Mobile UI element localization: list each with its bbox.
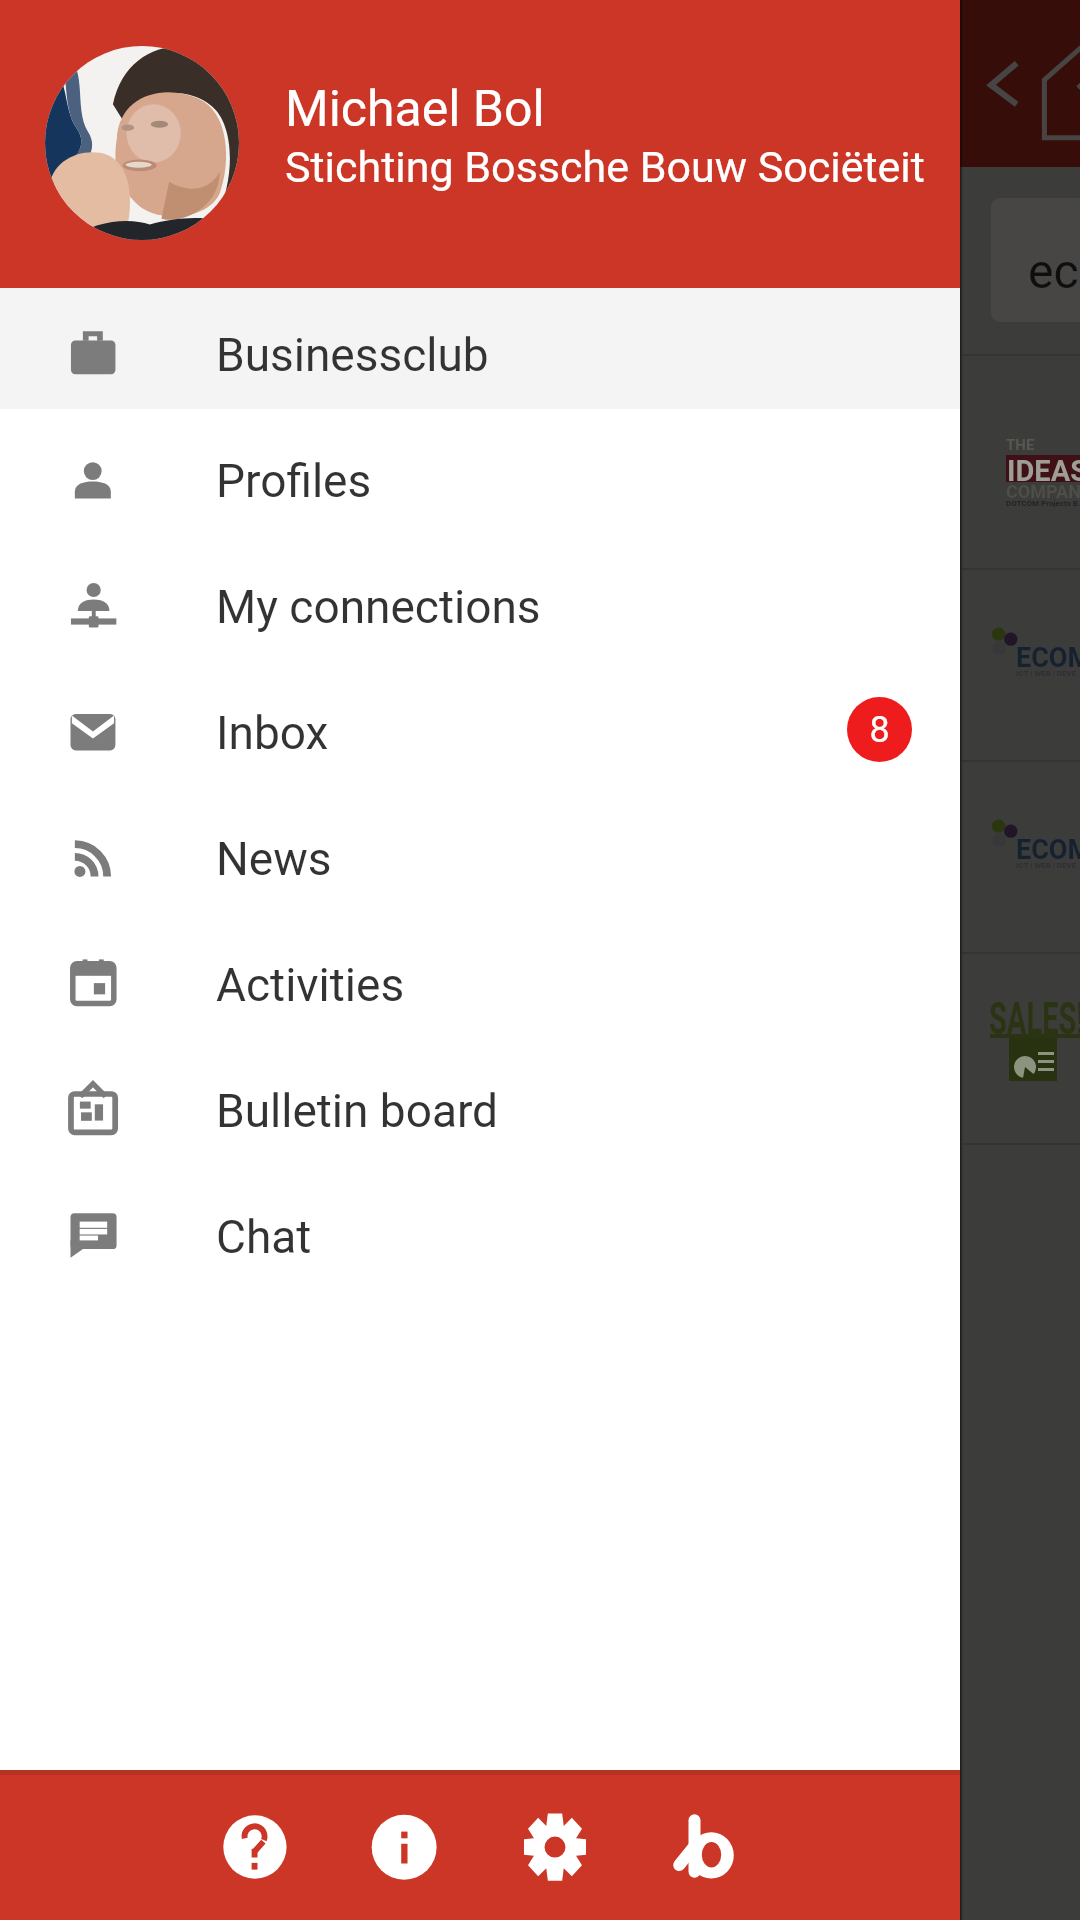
- staticText: ECOM: [1016, 834, 1080, 866]
- staticText: THE: [1006, 436, 1035, 454]
- staticText: COMPANY: [1006, 481, 1080, 502]
- staticText: Profiles: [216, 454, 372, 508]
- staticText: ICT | WEB | DEVE: [1016, 861, 1077, 870]
- button[interactable]: Businessclub: [0, 288, 960, 414]
- staticText: ICT | WEB | DEVE: [1016, 669, 1077, 678]
- staticText: ec: [1028, 243, 1079, 299]
- button[interactable]: Michael Bol: [0, 0, 960, 288]
- button[interactable]: Home: [657, 1799, 753, 1895]
- staticText: Chat: [216, 1210, 312, 1264]
- button[interactable]: Profiles: [0, 414, 960, 540]
- staticText: SALES!: [989, 993, 1080, 1045]
- button[interactable]: My connections: [0, 540, 960, 666]
- button[interactable]: Chat: [0, 1170, 960, 1296]
- staticText: My connections: [216, 580, 541, 634]
- staticText: Michael Bol: [285, 80, 545, 139]
- staticText: ECOM: [1016, 642, 1080, 674]
- button[interactable]: Settings: [507, 1799, 603, 1895]
- staticText: Businessclub: [216, 328, 489, 382]
- staticText: Stichting Bossche Bouw Sociëteit: [285, 142, 925, 192]
- staticText: Inbox: [216, 706, 329, 760]
- button[interactable]: Information: [356, 1799, 452, 1895]
- button[interactable]: Activities: [0, 918, 960, 1044]
- staticText: IDEAS: [1007, 454, 1080, 488]
- button[interactable]: Inbox: [0, 666, 960, 792]
- button[interactable]: News: [0, 792, 960, 918]
- staticText: Activities: [216, 958, 405, 1012]
- staticText: Bulletin board: [216, 1084, 499, 1138]
- staticText: News: [216, 832, 332, 886]
- staticText: DOTCOM Projects B.V.: [1006, 499, 1080, 508]
- button[interactable]: Help: [207, 1799, 303, 1895]
- staticText: 8: [869, 709, 890, 751]
- button[interactable]: Bulletin board: [0, 1044, 960, 1170]
